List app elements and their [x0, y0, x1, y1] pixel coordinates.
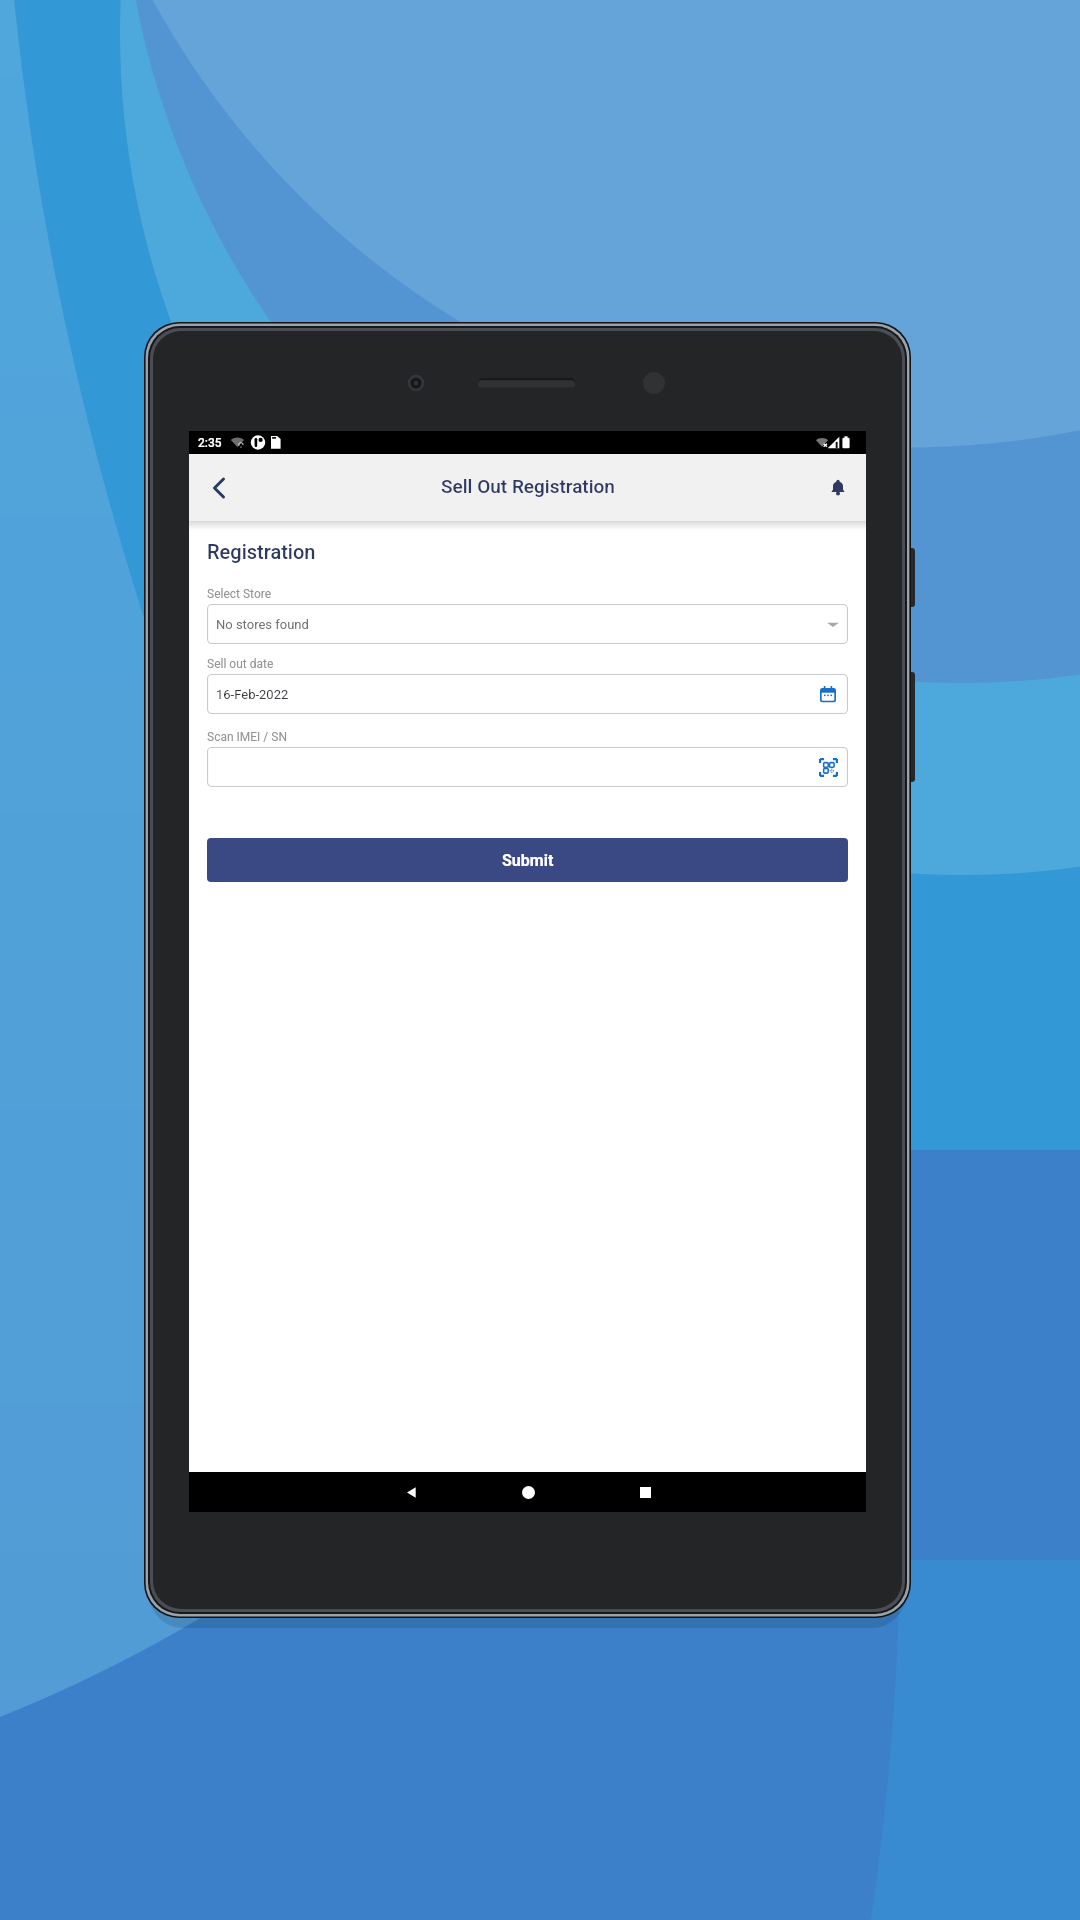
button[interactable]: Home — [508, 1472, 548, 1512]
button[interactable]: Submit — [207, 838, 848, 882]
button[interactable]: Pick date — [815, 681, 841, 707]
staticText: 2:35 — [198, 436, 222, 450]
button[interactable]: Back — [391, 1472, 431, 1512]
button[interactable]: No stores found — [207, 604, 848, 644]
staticText: 16-Feb-2022 — [216, 687, 289, 702]
staticText: Submit — [502, 851, 554, 870]
staticText: Sell Out Registration — [441, 475, 615, 497]
staticText: Registration — [207, 540, 316, 563]
button[interactable]: 16-Feb-2022 — [207, 674, 848, 714]
button[interactable]: Recents — [625, 1472, 665, 1512]
staticText: Select Store — [207, 587, 272, 601]
button[interactable]: Notifications — [818, 468, 858, 508]
staticText: No stores found — [216, 617, 309, 632]
button[interactable]: Scan barcode — [815, 754, 841, 780]
button[interactable]: Back — [197, 466, 241, 510]
button[interactable]: Scan barcode — [207, 747, 848, 787]
staticText: Scan IMEI / SN — [207, 730, 287, 744]
staticText: Sell out date — [207, 657, 274, 671]
